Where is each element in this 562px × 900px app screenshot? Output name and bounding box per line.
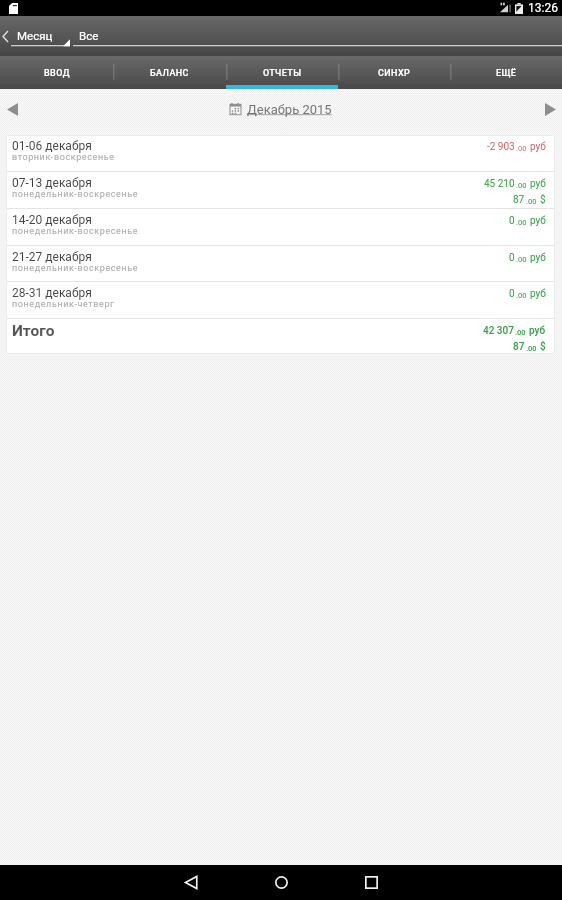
staticText: .00	[516, 181, 527, 190]
staticText: БАЛАНС	[150, 68, 189, 79]
staticText: понедельник-воскресенье	[12, 189, 139, 200]
button[interactable]: Next period	[545, 103, 556, 116]
button[interactable]: Previous period	[7, 103, 18, 116]
button[interactable]: Декабрь 2015	[230, 102, 332, 117]
staticText: 28-31 декабря	[12, 286, 92, 300]
staticText: 14-20 декабря	[12, 213, 92, 227]
staticText: .00	[526, 197, 537, 206]
staticText: .00	[526, 344, 537, 353]
staticText: 87	[513, 341, 525, 353]
button[interactable]: Back	[0, 16, 12, 56]
staticText: .00	[516, 255, 527, 264]
staticText: вторник-воскресенье	[12, 152, 115, 163]
button[interactable]: Все	[73, 16, 562, 56]
staticText: 45 210	[484, 178, 515, 190]
button[interactable]: ОТЧЕТЫ	[226, 56, 338, 89]
staticText: 13:26	[528, 1, 558, 15]
staticText: .00	[516, 218, 527, 227]
button[interactable]: 01-06 декабря	[6, 135, 555, 171]
staticText: .00	[515, 328, 526, 337]
staticText: понедельник-четверг	[12, 299, 115, 310]
button[interactable]: ЕЩЁ	[450, 56, 562, 89]
staticText: ЕЩЁ	[496, 68, 517, 79]
staticText: -2 903	[487, 141, 515, 153]
staticText: 0	[509, 215, 515, 227]
staticText: 21-27 декабря	[12, 250, 92, 264]
staticText: 07-13 декабря	[12, 176, 92, 190]
staticText: 0	[509, 288, 515, 300]
button[interactable]: Recents	[326, 865, 416, 900]
staticText: руб	[530, 215, 546, 227]
staticText: 87	[513, 194, 525, 206]
button[interactable]: Месяц	[11, 16, 70, 56]
button[interactable]: БАЛАНС	[113, 56, 226, 89]
staticText: руб	[530, 288, 546, 300]
staticText: Итого	[12, 322, 482, 340]
button[interactable]: 28-31 декабря	[6, 282, 555, 318]
staticText: Все	[79, 29, 99, 42]
staticText: 01-06 декабря	[12, 139, 92, 153]
staticText: $	[540, 194, 546, 206]
staticText: понедельник-воскресенье	[12, 226, 139, 237]
button[interactable]: 07-13 декабря	[6, 172, 555, 208]
staticText: .00	[516, 144, 527, 153]
staticText: Месяц	[17, 29, 53, 42]
button[interactable]: 21-27 декабря	[6, 246, 555, 281]
button[interactable]: 14-20 декабря	[6, 209, 555, 245]
staticText: $	[540, 341, 546, 353]
button[interactable]: Back	[146, 865, 236, 900]
staticText: 0	[509, 252, 515, 264]
staticText: руб	[530, 178, 546, 190]
staticText: руб	[530, 252, 546, 264]
button[interactable]: Home	[236, 865, 326, 900]
staticText: 42 307	[483, 325, 514, 337]
staticText: понедельник-воскресенье	[12, 263, 139, 274]
button[interactable]: Итого	[6, 319, 555, 354]
button[interactable]: СИНХР	[338, 56, 450, 89]
staticText: СИНХР	[378, 68, 411, 79]
staticText: руб	[530, 141, 546, 153]
button[interactable]: ВВОД	[0, 56, 113, 89]
staticText: руб	[529, 325, 546, 337]
staticText: ОТЧЕТЫ	[263, 68, 302, 79]
staticText: ВВОД	[44, 68, 70, 79]
staticText: Декабрь 2015	[247, 102, 332, 117]
staticText: .00	[516, 291, 527, 300]
